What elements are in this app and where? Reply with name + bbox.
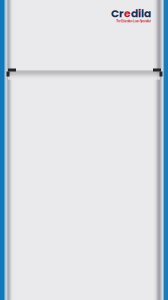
- staticText: i: [138, 9, 141, 18]
- staticText: d: [131, 9, 138, 18]
- staticText: The Education Loan Specialist: [116, 18, 151, 23]
- staticText: Cr: [111, 9, 124, 18]
- staticText: e: [124, 9, 131, 18]
- button[interactable]: Cr: [111, 9, 151, 23]
- staticText: la: [141, 9, 151, 18]
